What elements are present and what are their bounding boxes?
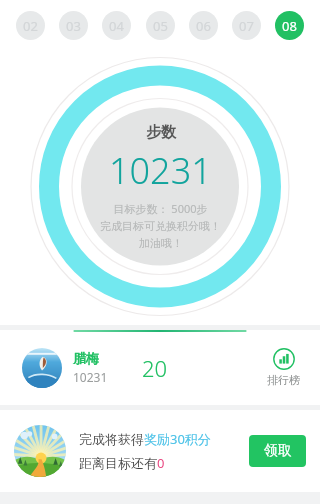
staticText: 08 [282,17,297,35]
staticText: 完成目标可兑换积分哦！ [100,219,221,233]
staticText: 06 [196,17,211,35]
button[interactable]: 03 [59,11,88,40]
staticText: 03 [66,17,81,35]
staticText: 10231 [73,369,108,385]
staticText: 05 [153,17,168,35]
button[interactable]: 排行榜 [265,348,302,387]
staticText: 20 [142,353,168,383]
button[interactable]: 领取 [249,435,306,467]
button[interactable]: 腊梅 [0,330,320,405]
button[interactable]: 05 [146,11,175,40]
staticText: 距离目标还有0 [79,454,165,472]
staticText: 领取 [264,442,292,460]
staticText: 排行榜 [267,373,300,387]
button[interactable]: 07 [232,11,261,40]
staticText: 步数 [146,123,176,142]
staticText: 完成将获得奖励30积分 [79,430,211,448]
button[interactable]: 06 [189,11,218,40]
staticText: 加油哦！ [139,236,183,250]
staticText: 10231 [109,146,212,195]
staticText: 目标步数： 5000步 [113,201,208,216]
staticText: 07 [239,17,254,35]
staticText: 04 [109,17,124,35]
button[interactable]: 02 [16,11,45,40]
staticText: 02 [23,17,38,35]
button[interactable]: 08 [275,11,304,40]
button[interactable]: 04 [102,11,131,40]
staticText: 腊梅 [73,350,99,366]
